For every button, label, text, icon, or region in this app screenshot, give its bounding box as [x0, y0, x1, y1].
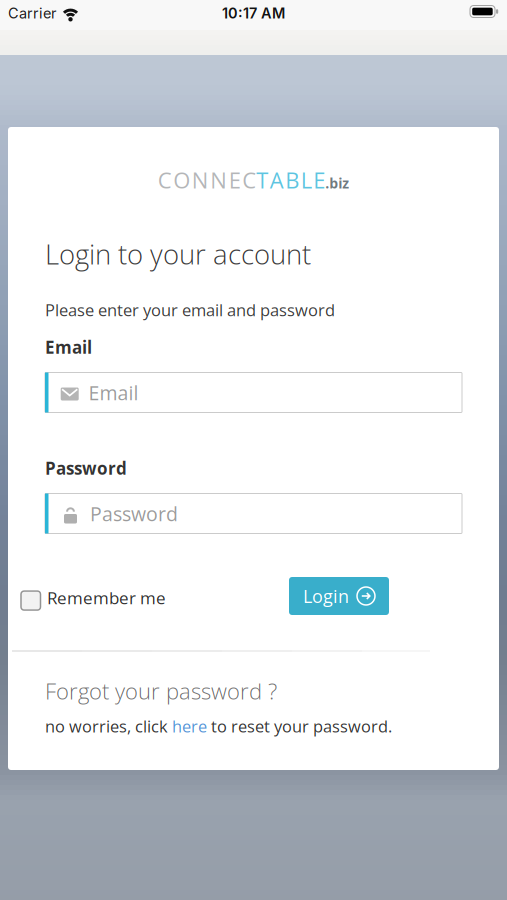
button[interactable]: Login — [289, 577, 389, 615]
staticText: .biz — [325, 174, 349, 193]
staticText: Please enter your email and password — [45, 298, 335, 321]
staticText: 10:17 AM — [222, 4, 285, 22]
button[interactable]: Password — [45, 493, 462, 533]
staticText: Forgot your password ? — [45, 676, 277, 706]
staticText: here — [172, 715, 207, 737]
staticText: Carrier — [8, 4, 56, 22]
staticText: Login — [303, 584, 349, 608]
button[interactable]: Remember me — [21, 589, 166, 612]
staticText: Email — [88, 379, 138, 406]
staticText: CONNEC — [158, 165, 256, 195]
staticText: no worries, click — [45, 715, 172, 737]
staticText: Login to your account — [45, 235, 311, 272]
staticText: Password — [45, 456, 127, 480]
staticText: Remember me — [47, 586, 166, 609]
staticText: TABLE — [256, 165, 325, 195]
staticText: Password — [90, 500, 178, 527]
staticText: to reset your password. — [207, 715, 392, 737]
staticText: Email — [45, 335, 92, 359]
button[interactable]: Email — [45, 372, 462, 412]
button[interactable]: here — [172, 715, 207, 737]
